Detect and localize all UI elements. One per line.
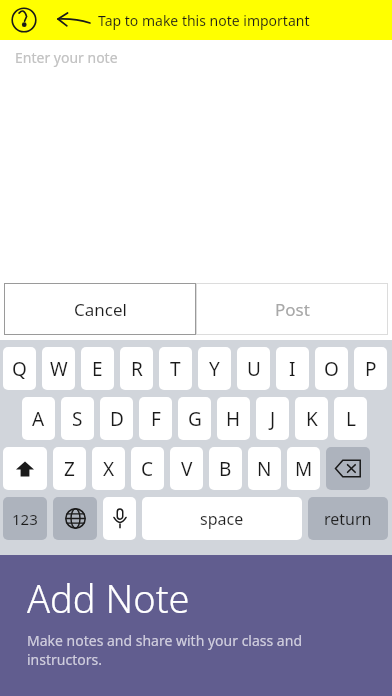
staticText: F bbox=[151, 406, 161, 432]
button[interactable]: V bbox=[170, 447, 203, 490]
button[interactable]: I bbox=[276, 347, 309, 390]
button[interactable]: T bbox=[159, 347, 192, 390]
staticText: N bbox=[257, 456, 272, 482]
staticText: D bbox=[110, 406, 124, 432]
staticText: U bbox=[247, 356, 261, 382]
button[interactable]: D bbox=[100, 397, 133, 440]
staticText: P bbox=[365, 356, 377, 382]
staticText: space bbox=[200, 508, 244, 530]
button[interactable]: E bbox=[81, 347, 114, 390]
staticText: C bbox=[141, 456, 154, 482]
button[interactable]: Cancel bbox=[4, 283, 196, 335]
button[interactable]: 123 bbox=[3, 497, 47, 540]
button[interactable]: A bbox=[22, 397, 55, 440]
staticText: Make notes and share with your class and… bbox=[27, 631, 372, 669]
staticText: M bbox=[295, 456, 313, 482]
button[interactable]: key bbox=[3, 447, 47, 490]
staticText: T bbox=[170, 356, 181, 382]
staticText: 123 bbox=[12, 509, 38, 529]
button[interactable]: M bbox=[287, 447, 320, 490]
button[interactable]: Q bbox=[3, 347, 36, 390]
staticText: R bbox=[131, 356, 143, 382]
button[interactable]: space bbox=[142, 497, 302, 540]
button[interactable]: X bbox=[92, 447, 125, 490]
button[interactable]: Y bbox=[198, 347, 231, 390]
button[interactable]: Important bbox=[0, 0, 392, 40]
button[interactable]: G bbox=[178, 397, 211, 440]
button[interactable]: K bbox=[295, 397, 328, 440]
button[interactable]: key bbox=[326, 447, 370, 490]
button[interactable]: L bbox=[334, 397, 367, 440]
staticText: L bbox=[346, 406, 356, 432]
button[interactable]: key bbox=[53, 497, 97, 540]
staticText: O bbox=[324, 356, 339, 382]
staticText: X bbox=[103, 456, 115, 482]
staticText: H bbox=[226, 406, 241, 432]
button[interactable]: key bbox=[103, 497, 136, 540]
button[interactable]: B bbox=[209, 447, 242, 490]
button[interactable]: S bbox=[61, 397, 94, 440]
other: Arrow bbox=[56, 10, 90, 30]
staticText: J bbox=[270, 406, 276, 432]
button[interactable]: U bbox=[237, 347, 270, 390]
button[interactable]: F bbox=[139, 397, 172, 440]
button[interactable]: C bbox=[131, 447, 164, 490]
staticText: return bbox=[324, 508, 372, 530]
staticText: Post bbox=[275, 298, 310, 321]
staticText: Enter your note bbox=[15, 48, 118, 67]
staticText: Cancel bbox=[74, 298, 127, 321]
staticText: A bbox=[32, 406, 45, 432]
button[interactable]: Z bbox=[53, 447, 86, 490]
button[interactable]: Enter your note bbox=[0, 40, 392, 283]
button[interactable]: R bbox=[120, 347, 153, 390]
staticText: I bbox=[289, 356, 296, 382]
button[interactable]: H bbox=[217, 397, 250, 440]
staticText: V bbox=[181, 456, 193, 482]
staticText: G bbox=[188, 406, 202, 432]
button[interactable]: N bbox=[248, 447, 281, 490]
staticText: K bbox=[306, 406, 318, 432]
staticText: Tap to make this note important bbox=[98, 11, 310, 30]
staticText: Q bbox=[12, 356, 27, 382]
other: Important bbox=[11, 7, 37, 33]
staticText: W bbox=[50, 356, 68, 382]
staticText: B bbox=[219, 456, 232, 482]
staticText: Z bbox=[64, 456, 75, 482]
staticText: E bbox=[92, 356, 103, 382]
staticText: S bbox=[72, 406, 83, 432]
button[interactable]: J bbox=[256, 397, 289, 440]
button[interactable]: P bbox=[354, 347, 387, 390]
button[interactable]: O bbox=[315, 347, 348, 390]
staticText: Add Note bbox=[27, 572, 190, 624]
staticText: Y bbox=[209, 356, 220, 382]
button[interactable]: return bbox=[308, 497, 388, 540]
button[interactable]: W bbox=[42, 347, 75, 390]
button[interactable]: Post bbox=[196, 283, 388, 335]
